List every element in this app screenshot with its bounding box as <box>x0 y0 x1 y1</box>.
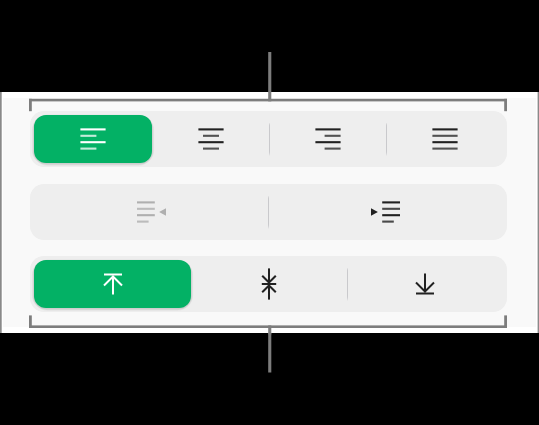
button[interactable]: Increase indent <box>268 188 503 236</box>
button[interactable]: Align left <box>34 115 152 163</box>
other: Align bottom <box>411 268 439 300</box>
other: Align right <box>315 128 341 150</box>
button[interactable]: Align right <box>269 115 386 163</box>
other: Align middle <box>255 268 283 300</box>
other: Increase indent <box>371 201 400 223</box>
other: Align center <box>198 128 224 150</box>
button[interactable]: Align middle <box>191 260 347 308</box>
other: Align left <box>80 128 106 150</box>
other: Decrease indent <box>137 201 166 223</box>
other: Justify <box>432 128 458 150</box>
other: Align top <box>99 268 127 300</box>
button[interactable]: Align bottom <box>347 260 503 308</box>
button[interactable]: Decrease indent <box>34 188 268 236</box>
button[interactable]: Align center <box>152 115 269 163</box>
button[interactable]: Align top <box>34 260 191 308</box>
button[interactable]: Justify <box>386 115 503 163</box>
